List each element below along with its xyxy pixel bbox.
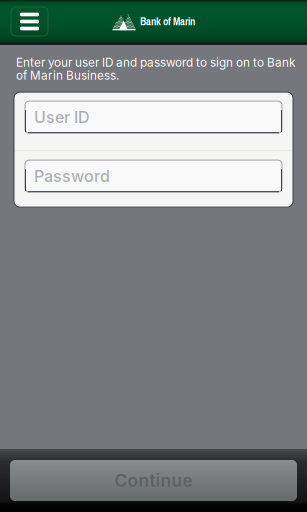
staticText: Continue [114,470,192,491]
staticText: Password [34,166,110,186]
staticText: User ID [34,107,90,127]
staticText: Bank of Marin [140,14,195,29]
button[interactable]: Continue [0,460,307,501]
button[interactable]: Menu [11,7,48,36]
staticText: Enter your user ID and password to sign … [16,56,295,82]
